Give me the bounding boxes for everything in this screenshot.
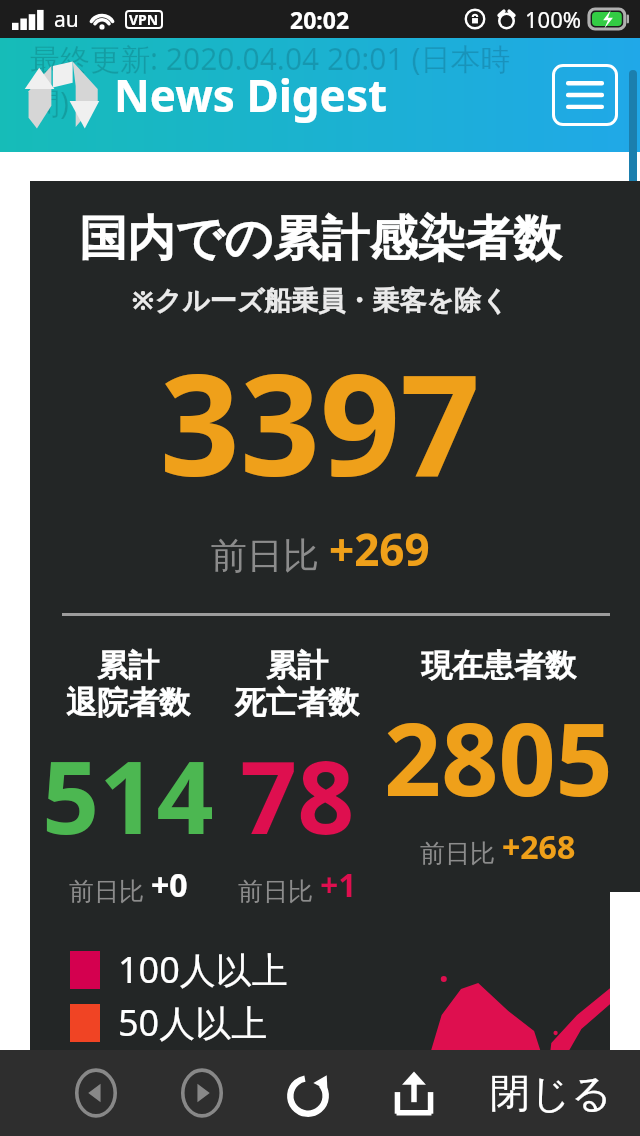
button[interactable]: Forward (166, 1057, 238, 1129)
staticText: 累計 退院者数 (66, 646, 190, 723)
staticText: 前日比 (69, 873, 151, 907)
button[interactable]: 閉じる (490, 1068, 612, 1118)
staticText: au (54, 5, 79, 34)
staticText: 最終更新: 2020.04.04 20:01 (日本時 (30, 38, 511, 79)
staticText: 20:02 (290, 4, 350, 35)
staticText: 間) (30, 82, 69, 123)
button[interactable]: Menu (552, 64, 618, 126)
staticText: 累計 死亡者数 (235, 646, 359, 723)
staticText: 現在患者数 (421, 646, 576, 685)
button[interactable]: Reload (272, 1057, 344, 1129)
staticText: News (114, 65, 235, 125)
staticText: 100% (525, 4, 582, 34)
staticText: +0 (151, 863, 188, 907)
staticText: ※クルーズ船乗員・乗客を除く (30, 281, 610, 318)
staticText: +1 (320, 863, 357, 907)
staticText: 50人以上 (118, 998, 268, 1047)
staticText: 前日比 (238, 873, 320, 907)
staticText: 前日比 (420, 835, 502, 869)
staticText: 2805 (384, 689, 613, 825)
staticText: 前日比 (211, 530, 329, 579)
staticText: VPN (129, 10, 159, 29)
button[interactable]: Back (60, 1057, 132, 1129)
staticText: 閉じる (490, 1068, 612, 1118)
staticText: 100人以上 (118, 945, 288, 994)
staticText: +269 (329, 519, 430, 579)
staticText: Digest (235, 65, 388, 125)
staticText: 3397 (30, 326, 610, 517)
staticText: +268 (502, 825, 576, 869)
staticText: 国内での累計感染者数 (30, 209, 610, 269)
button[interactable]: Share (378, 1057, 450, 1129)
staticText: 514 (42, 727, 214, 863)
staticText: 78 (240, 727, 355, 863)
